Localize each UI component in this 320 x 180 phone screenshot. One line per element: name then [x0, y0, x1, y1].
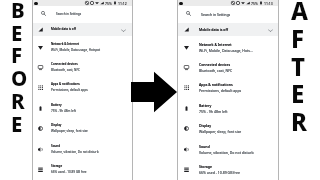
staticText: Sound	[51, 144, 61, 148]
staticText: Bluetooth, cast, NFC	[51, 68, 80, 72]
staticText: Wallpaper, sleep, font size	[51, 129, 88, 133]
staticText: Wallpaper, sleep, font size	[199, 129, 242, 134]
button[interactable]: Sound	[177, 141, 279, 161]
staticText: A	[291, 0, 308, 27]
button[interactable]: Network & Internet	[32, 39, 133, 59]
button[interactable]: Apps & notifications	[32, 79, 133, 99]
button[interactable]: Mobile data is off	[32, 23, 133, 36]
staticText: Network & Internet	[199, 42, 232, 47]
staticText: T	[291, 50, 306, 83]
staticText: Wallpaper, sleep, font size	[51, 129, 88, 133]
staticText: Display	[51, 123, 62, 127]
staticText: 75% - 9h 48m left	[51, 109, 76, 113]
button[interactable]: Mobile data is off	[177, 23, 279, 36]
staticText: 11:13	[264, 1, 273, 6]
staticText: Storage	[51, 164, 63, 168]
staticText: 75%	[105, 1, 112, 6]
button[interactable]: Network & Internet	[177, 39, 279, 59]
staticText: R	[11, 87, 25, 115]
staticText: Network & Internet	[51, 42, 80, 46]
button[interactable]: Search in Settings	[35, 8, 130, 19]
staticText: Volume, vibration, Do not disturb	[51, 150, 99, 154]
button[interactable]: Apps & notifications	[177, 79, 279, 99]
staticText: Sound	[199, 144, 210, 149]
staticText: Permissions, default apps	[51, 88, 88, 92]
button[interactable]: Sound	[32, 141, 133, 161]
staticText: Volume, vibration, Do not disturb	[199, 150, 254, 155]
staticText: Display	[199, 123, 212, 128]
button[interactable]: Storage	[177, 161, 279, 180]
staticText: Search in Settings	[201, 12, 231, 17]
staticText: Search in Settings	[56, 12, 82, 16]
staticText: Volume, vibration, Do not disturb	[199, 150, 254, 155]
staticText: 75% - 9h 48m left	[199, 109, 228, 114]
staticText: 75% - 9h 48m left	[199, 109, 228, 114]
staticText: Sound	[199, 144, 210, 149]
staticText: Storage	[199, 164, 212, 169]
staticText: 75%	[105, 1, 112, 6]
staticText: Permissions, default apps	[51, 88, 88, 92]
staticText: F	[291, 22, 305, 55]
staticText: 66% used - 10.89 GB free	[199, 170, 240, 175]
staticText: 11:12	[118, 1, 127, 6]
staticText: Wi-Fi, Mobile, Data usage, Hotspot	[51, 48, 101, 52]
staticText: Search in Settings	[56, 12, 82, 16]
staticText: Search in Settings	[56, 12, 82, 16]
staticText: Apps & notifications	[51, 82, 80, 86]
staticText: Network & Internet	[199, 42, 232, 47]
staticText: Battery	[199, 103, 212, 108]
staticText: Mobile data is off	[199, 27, 228, 32]
staticText: Mobile data is off	[199, 27, 228, 32]
button[interactable]: Search in Settings	[180, 8, 277, 19]
staticText: Network & Internet	[199, 42, 232, 47]
staticText: Permissions, default apps	[51, 88, 88, 92]
staticText: 75% - 9h 48m left	[199, 109, 228, 114]
staticText: Storage	[199, 164, 212, 169]
staticText: Display	[51, 123, 62, 127]
staticText: Wi-Fi, Mobile, Data usage, Hots…	[199, 48, 253, 53]
staticText: Wi-Fi, Mobile, Data usage, Hots…	[199, 48, 253, 53]
staticText: Apps & notifications	[51, 82, 80, 86]
staticText: Sound	[51, 144, 61, 148]
staticText: Mobile data is off	[199, 27, 228, 32]
staticText: R	[291, 105, 307, 138]
staticText: E	[11, 110, 23, 138]
staticText: Sound	[199, 144, 210, 149]
button[interactable]: Battery	[32, 100, 133, 120]
staticText: Battery	[51, 103, 62, 107]
staticText: Volume, vibration, Do not disturb	[51, 150, 99, 154]
staticText: Bluetooth, cast, NFC	[199, 68, 233, 73]
staticText: Apps & notifications	[199, 82, 233, 87]
staticText: Display	[199, 123, 212, 128]
staticText: Network & Internet	[51, 42, 80, 46]
button[interactable]: Connected devices	[177, 59, 279, 79]
staticText: Permissions, default apps	[199, 88, 242, 93]
staticText: E	[291, 77, 305, 110]
staticText: Storage	[51, 164, 63, 168]
staticText: Battery	[199, 103, 212, 108]
staticText: Bluetooth, cast, NFC	[199, 68, 233, 73]
other: Arrow pointing right	[131, 71, 177, 113]
button[interactable]: Display	[177, 120, 279, 140]
staticText: 75%	[251, 1, 258, 6]
staticText: Bluetooth, cast, NFC	[51, 68, 80, 72]
staticText: Apps & notifications	[199, 82, 233, 87]
staticText: Storage	[199, 164, 212, 169]
staticText: Connected devices	[199, 62, 231, 67]
staticText: 75% - 9h 48m left	[51, 109, 76, 113]
button[interactable]: Display	[32, 120, 133, 140]
staticText: B	[11, 0, 25, 24]
staticText: 66% used - 10.89 GB free	[51, 170, 87, 174]
button[interactable]: Storage	[32, 161, 133, 180]
staticText: 11:12	[118, 1, 127, 6]
staticText: Bluetooth, cast, NFC	[199, 68, 233, 73]
staticText: Mobile data is off	[51, 27, 76, 31]
button[interactable]: Connected devices	[32, 59, 133, 79]
staticText: F	[11, 41, 23, 69]
staticText: 66% used - 10.89 GB free	[51, 170, 87, 174]
staticText: Permissions, default apps	[199, 88, 242, 93]
staticText: 11:13	[264, 1, 273, 6]
staticText: Volume, vibration, Do not disturb	[51, 150, 99, 154]
staticText: Search in Settings	[201, 12, 231, 17]
button[interactable]: Battery	[177, 100, 279, 120]
